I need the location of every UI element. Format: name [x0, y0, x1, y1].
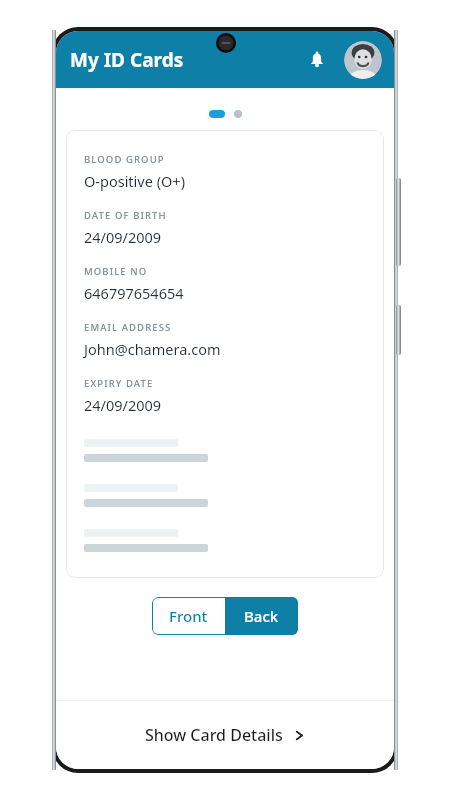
button[interactable]: Back	[225, 597, 298, 635]
staticText: Front	[169, 606, 208, 626]
staticText: My ID Cards	[70, 47, 184, 73]
button[interactable]: Show Card Details	[56, 701, 394, 769]
staticText: 24/09/2009	[84, 395, 162, 415]
button[interactable]: Page 1	[209, 110, 225, 118]
staticText: MOBILE NO	[84, 265, 148, 278]
staticText: EXPIRY DATE	[84, 377, 154, 390]
staticText: Show Card Details	[145, 724, 283, 746]
staticText: BLOOD GROUP	[84, 153, 165, 166]
staticText: O-positive (O+)	[84, 171, 185, 191]
staticText: DATE OF BIRTH	[84, 209, 167, 222]
button[interactable]: Notifications	[300, 43, 334, 77]
staticText: Back	[244, 606, 279, 626]
staticText: John@chamera.com	[84, 339, 221, 359]
staticText: 646797654654	[84, 283, 184, 303]
button[interactable]: Profile	[344, 41, 382, 79]
button[interactable]: BLOOD GROUP	[66, 130, 384, 578]
button[interactable]: Page 2	[234, 110, 242, 118]
button[interactable]: Front	[152, 597, 225, 635]
staticText: 24/09/2009	[84, 227, 162, 247]
staticText: EMAIL ADDRESS	[84, 321, 172, 334]
